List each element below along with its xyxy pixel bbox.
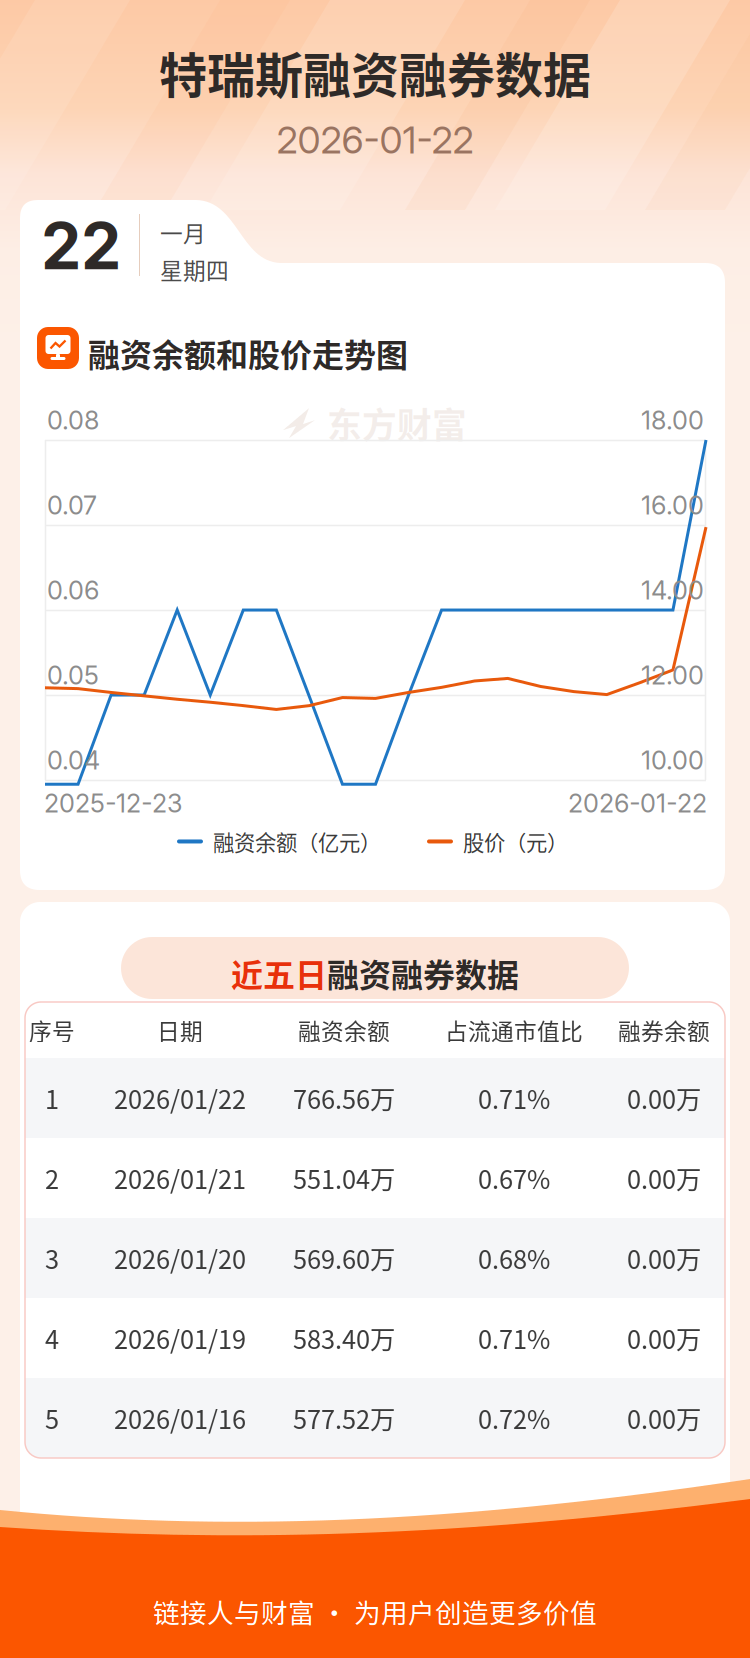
staticText: 一月	[160, 216, 206, 249]
staticText: 0.71%	[478, 1320, 550, 1356]
staticText: 0.00万	[627, 1160, 701, 1196]
staticText: 融资余额	[298, 1014, 390, 1046]
staticText: 5	[45, 1400, 59, 1436]
staticText: 16.00	[641, 490, 704, 521]
staticText: 占流通市值比	[445, 1014, 583, 1046]
staticText: 0.00万	[627, 1240, 701, 1276]
staticText: 0.05	[47, 660, 99, 691]
staticText: 0.04	[47, 745, 100, 776]
staticText: 0.07	[47, 490, 97, 521]
staticText: 766.56万	[293, 1080, 395, 1116]
staticText: 日期	[157, 1014, 203, 1046]
staticText: 0.71%	[478, 1080, 550, 1116]
staticText: 569.60万	[293, 1240, 395, 1276]
staticText: 链接人与财富 · 为用户创造更多价值	[153, 1592, 597, 1631]
staticText: 3	[45, 1240, 59, 1276]
staticText: 2026/01/16	[114, 1400, 246, 1436]
staticText: 551.04万	[293, 1160, 395, 1196]
staticText: 577.52万	[293, 1400, 395, 1436]
staticText: 2025-12-23	[44, 788, 183, 819]
staticText: 22	[41, 207, 121, 285]
staticText: 2026/01/19	[114, 1320, 246, 1356]
staticText: 融资余额和股价走势图	[88, 330, 408, 376]
staticText: 12.00	[641, 660, 704, 691]
staticText: 融资余额（亿元）	[213, 826, 381, 857]
staticText: 10.00	[641, 745, 704, 776]
staticText: 1	[45, 1080, 59, 1116]
staticText: 2026/01/21	[114, 1160, 246, 1196]
staticText: 0.72%	[478, 1400, 550, 1436]
staticText: 2026/01/22	[114, 1080, 246, 1116]
staticText: 特瑞斯融资融券数据	[159, 37, 591, 107]
staticText: 0.00万	[627, 1080, 701, 1116]
staticText: 融券余额	[618, 1014, 710, 1046]
staticText: 0.68%	[478, 1240, 550, 1276]
staticText: 星期四	[160, 253, 229, 286]
staticText: 14.00	[641, 575, 704, 606]
staticText: 0.06	[47, 575, 99, 606]
staticText: 2026-01-22	[568, 788, 707, 819]
staticText: 583.40万	[293, 1320, 395, 1356]
staticText: 近五日	[231, 950, 327, 996]
staticText: 18.00	[641, 405, 704, 436]
staticText: 2	[45, 1160, 59, 1196]
staticText: 融资融券数据	[327, 950, 519, 996]
staticText: 0.08	[47, 405, 99, 436]
staticText: 东方财富	[327, 398, 467, 448]
staticText: 序号	[29, 1014, 75, 1046]
staticText: 4	[45, 1320, 59, 1356]
staticText: 0.00万	[627, 1320, 701, 1356]
staticText: 2026/01/20	[114, 1240, 246, 1276]
staticText: 0.67%	[478, 1160, 550, 1196]
staticText: 0.00万	[627, 1400, 701, 1436]
staticText: 股价（元）	[463, 826, 568, 857]
staticText: 2026-01-22	[276, 117, 473, 163]
